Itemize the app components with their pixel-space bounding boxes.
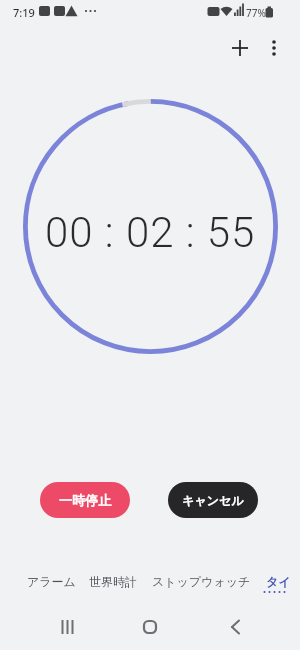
button[interactable] (260, 34, 288, 62)
staticText: タイ (266, 574, 291, 589)
staticText: 00 : 02 : 55 (45, 208, 256, 257)
button[interactable]: 一時停止 (40, 482, 130, 518)
button[interactable]: ストップウォッチ (152, 574, 251, 589)
button[interactable]: タイ (266, 574, 291, 589)
button[interactable] (130, 613, 170, 641)
staticText: キャンセル (182, 493, 244, 508)
staticText: 7:19 (13, 5, 35, 20)
button[interactable] (47, 613, 87, 641)
staticText: 77% (246, 6, 266, 20)
staticText: 一時停止 (59, 492, 111, 508)
button[interactable] (215, 613, 255, 641)
button[interactable]: アラーム (27, 574, 76, 589)
button[interactable]: 世界時計 (89, 574, 137, 589)
button[interactable] (226, 34, 254, 62)
staticText: アラーム (27, 574, 76, 589)
staticText: 世界時計 (89, 574, 137, 589)
button[interactable]: キャンセル (168, 482, 258, 518)
staticText: ストップウォッチ (152, 574, 251, 589)
